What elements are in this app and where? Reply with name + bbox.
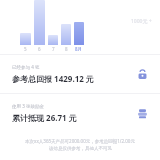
staticText: 6 (38, 46, 41, 52)
staticText: 已经参与 4 笔 (12, 64, 40, 70)
staticText: 本次xx人365天产品可2000.00元，参考总回报1/2.00元 (25, 138, 135, 144)
staticText: 累计抵现 26.71 元 (12, 112, 77, 123)
staticText: 5 (24, 46, 27, 52)
staticText: 使用 3 张鼓励金 (12, 103, 44, 109)
button[interactable]: 已经参与 4 笔 (0, 55, 160, 93)
staticText: 7 (52, 46, 55, 52)
staticText: 8月 (75, 46, 83, 52)
staticText: 8 (65, 46, 68, 52)
button[interactable]: 查看参考总回报明细 (134, 66, 150, 82)
button[interactable]: 查看累计抵现明细 (134, 105, 150, 121)
staticText: 该信息仅供参考，具他人不可见 (49, 146, 112, 152)
button[interactable]: 使用 3 张鼓励金 (0, 94, 160, 132)
staticText: 参考总回报 1429.12 元 (12, 73, 94, 84)
staticText: 1000元 + (131, 18, 152, 25)
